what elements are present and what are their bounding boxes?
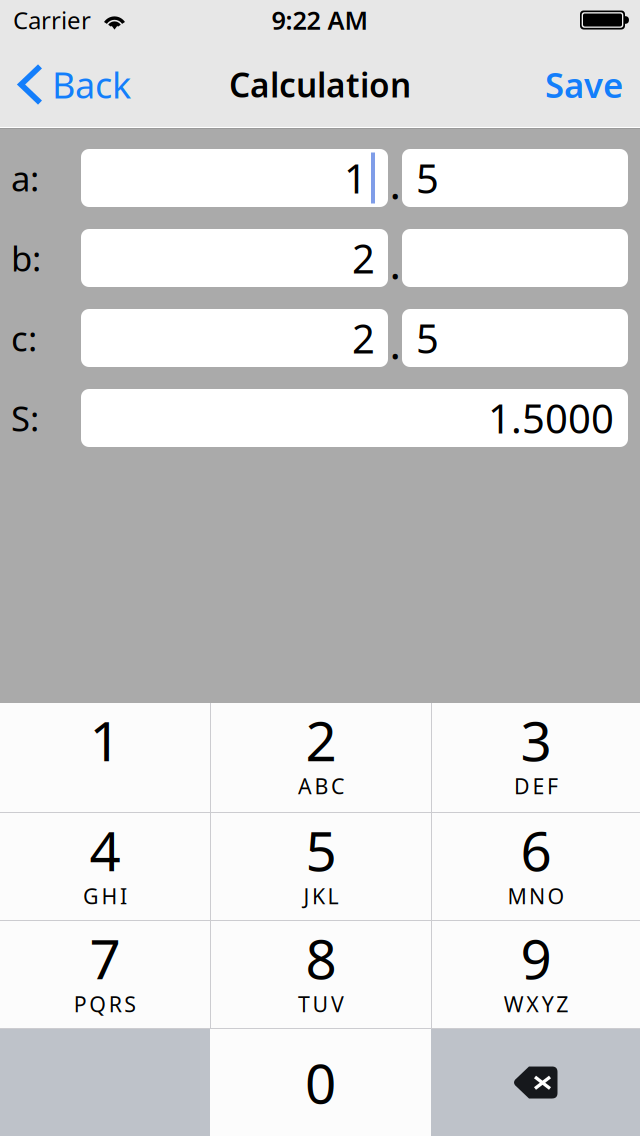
staticText: PQRS [74,990,136,1018]
staticText: Back [52,61,131,108]
staticText: Save [545,61,623,107]
staticText: 1.5000 [488,391,614,444]
staticText: 5 [305,814,336,886]
button[interactable]: Delete [431,1029,640,1136]
staticText: . [389,235,400,291]
button[interactable]: 9 [432,921,640,1028]
button[interactable]: 6 [432,813,640,920]
staticText: 6 [520,814,551,886]
staticText: 2 [352,231,375,284]
staticText: 8 [305,922,336,994]
button[interactable]: 3 [432,703,640,812]
staticText: ABC [298,772,344,800]
staticText: 9:22 AM [271,3,368,37]
staticText: 1 [89,704,120,776]
staticText: MNO [507,882,564,910]
staticText: 5 [416,151,439,204]
staticText: Calculation [229,62,411,107]
staticText: 5 [416,311,439,364]
staticText: S: [11,395,39,441]
staticText: 2 [305,704,336,776]
button[interactable]: 4 [0,813,210,920]
staticText: b: [11,235,41,281]
button[interactable]: Back [0,40,145,128]
staticText: 3 [520,704,551,776]
staticText: a: [11,155,39,201]
staticText: GHI [83,882,127,910]
button[interactable]: 1 [0,703,210,812]
staticText: . [389,315,400,371]
button[interactable]: 0 [210,1029,431,1136]
button[interactable]: 7 [0,921,210,1028]
button[interactable]: Save [527,40,640,128]
staticText: TUV [298,990,344,1018]
staticText: 2 [352,311,375,364]
staticText: 7 [89,922,120,994]
staticText: WXYZ [504,990,568,1018]
staticText: 0 [305,1046,336,1119]
staticText: 1 [344,151,367,204]
staticText: Carrier [13,4,91,36]
button[interactable]: 2 [211,703,431,812]
button[interactable]: 5 [211,813,431,920]
staticText: 9 [520,922,551,994]
button[interactable]: 8 [211,921,431,1028]
staticText: JKL [303,882,338,910]
staticText: c: [11,315,37,361]
staticText: DEF [514,772,558,800]
staticText: . [389,155,400,211]
staticText: 4 [89,814,120,886]
